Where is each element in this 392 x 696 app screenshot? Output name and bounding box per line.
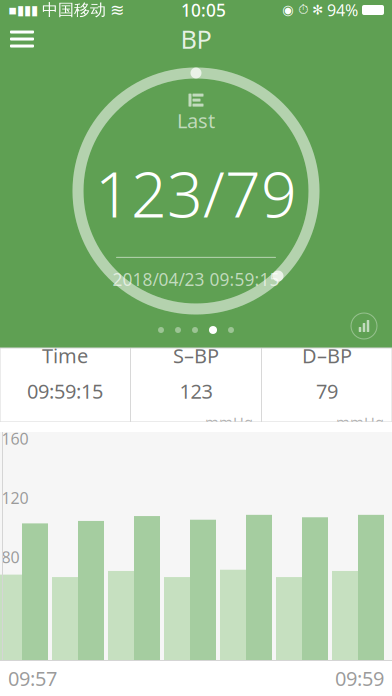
staticText: 123 (179, 378, 212, 404)
staticText: 79 (316, 378, 338, 404)
staticText: 160 (1, 428, 28, 449)
staticText: ◉ (282, 2, 294, 17)
staticText: ✻ (312, 2, 323, 17)
staticText: 80 (1, 546, 19, 568)
staticText: 10:05 (181, 0, 226, 21)
staticText: mmHg (336, 412, 384, 432)
button[interactable]: Menu (0, 17, 44, 61)
staticText: D–BP (302, 342, 352, 369)
staticText: 09:59:15 (27, 378, 103, 404)
staticText (118, 412, 122, 432)
staticText: ⏱ (298, 3, 308, 16)
staticText: ▪▮▮▮ (8, 2, 38, 17)
button[interactable]: Chart (342, 304, 386, 348)
staticText: 123/79 (95, 152, 297, 235)
staticText: Last (177, 107, 215, 134)
staticText: 中国移动 (42, 0, 106, 20)
staticText: ≋ (110, 0, 125, 20)
staticText: 94% (327, 0, 358, 21)
staticText: 40 (1, 606, 19, 627)
staticText: S–BP (173, 342, 219, 369)
staticText: Time (42, 342, 88, 369)
staticText: 09:59 (335, 665, 384, 692)
staticText: 2018/04/23 09:59:15 (112, 268, 279, 291)
staticText: 0 (1, 665, 10, 686)
staticText: 09:57 (8, 665, 57, 692)
staticText: mmHg (205, 412, 253, 432)
staticText: 120 (1, 487, 28, 508)
staticText: BP (180, 22, 211, 56)
